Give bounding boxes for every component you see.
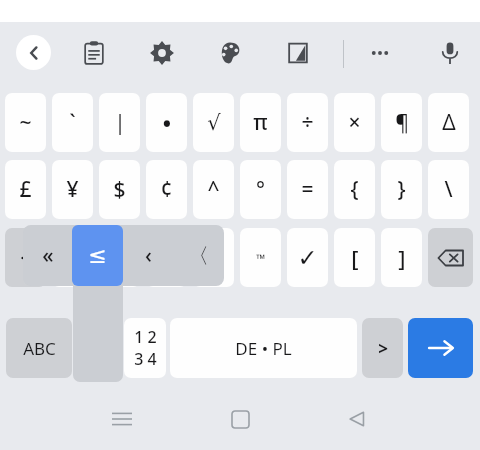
button[interactable]: ¥: [52, 160, 93, 219]
button[interactable]: «: [23, 225, 72, 286]
staticText: ÷: [301, 108, 314, 137]
button[interactable]: DE • PL: [170, 318, 357, 378]
staticText: √: [207, 111, 221, 135]
button[interactable]: ÷: [287, 93, 328, 152]
staticText: [: [351, 243, 359, 273]
staticText: ×: [348, 108, 361, 137]
button[interactable]: Clipboard: [78, 37, 110, 69]
button[interactable]: ≤: [72, 225, 123, 286]
staticText: ^: [207, 175, 220, 204]
staticText: ¥: [66, 175, 79, 204]
button[interactable]: Themes: [214, 37, 246, 69]
button[interactable]: \: [428, 160, 469, 219]
staticText: `: [69, 108, 76, 137]
staticText: ¢: [160, 175, 173, 204]
button[interactable]: ✓: [287, 228, 328, 287]
button[interactable]: Back: [16, 35, 51, 70]
button[interactable]: ¢: [146, 160, 187, 219]
button[interactable]: More options: [364, 37, 396, 69]
button[interactable]: ~: [5, 93, 46, 152]
button[interactable]: Resize keyboard: [282, 37, 314, 69]
staticText: DE • PL: [235, 337, 292, 360]
button[interactable]: ‹: [123, 225, 173, 286]
staticText: ]: [398, 243, 406, 273]
button[interactable]: °: [240, 160, 281, 219]
staticText: ¶: [395, 108, 409, 137]
button[interactable]: π: [240, 93, 281, 152]
staticText: <: [20, 244, 32, 271]
button[interactable]: Settings: [146, 37, 178, 69]
button[interactable]: •: [146, 93, 187, 152]
button[interactable]: [146, 228, 187, 287]
staticText: π: [253, 108, 268, 137]
staticText: 1 2: [134, 326, 157, 348]
button[interactable]: {: [334, 160, 375, 219]
button[interactable]: [52, 228, 93, 287]
button[interactable]: Less than variants: [5, 228, 46, 287]
staticText: \: [444, 175, 453, 204]
staticText: £: [19, 175, 32, 204]
button[interactable]: £: [5, 160, 46, 219]
button[interactable]: =: [287, 160, 328, 219]
button[interactable]: Voice input: [434, 37, 466, 69]
staticText: $: [113, 175, 126, 204]
button[interactable]: `: [52, 93, 93, 152]
button[interactable]: √: [193, 93, 234, 152]
staticText: Δ: [442, 108, 456, 137]
staticText: ✓: [297, 244, 318, 272]
button[interactable]: }: [381, 160, 422, 219]
staticText: •: [162, 105, 172, 140]
staticText: {: [350, 175, 359, 204]
staticText: }: [397, 175, 406, 204]
button[interactable]: |: [99, 93, 140, 152]
staticText: ~: [19, 108, 32, 137]
button[interactable]: >: [362, 318, 403, 378]
staticText: >: [378, 337, 388, 360]
button[interactable]: 〈: [173, 225, 224, 286]
button[interactable]: $: [99, 160, 140, 219]
button[interactable]: [193, 228, 234, 287]
staticText: 〈: [188, 243, 209, 269]
button[interactable]: Back: [340, 402, 374, 436]
staticText: ≤: [88, 243, 107, 269]
staticText: ‹: [145, 241, 152, 270]
button[interactable]: Enter: [408, 318, 473, 378]
button[interactable]: Menu: [105, 402, 139, 436]
button[interactable]: [: [334, 228, 375, 287]
button[interactable]: ¶: [381, 93, 422, 152]
button[interactable]: ABC: [6, 318, 72, 378]
staticText: °: [256, 175, 265, 204]
staticText: ™: [256, 250, 266, 266]
button[interactable]: ™: [240, 228, 281, 287]
button[interactable]: Backspace: [428, 228, 473, 287]
button[interactable]: [99, 228, 140, 287]
button[interactable]: ×: [334, 93, 375, 152]
button[interactable]: 1 2: [124, 318, 166, 378]
button[interactable]: Δ: [428, 93, 469, 152]
button[interactable]: ]: [381, 228, 422, 287]
staticText: 3 4: [134, 348, 157, 370]
staticText: =: [301, 175, 314, 204]
button[interactable]: ^: [193, 160, 234, 219]
staticText: |: [114, 108, 126, 137]
staticText: ABC: [23, 337, 56, 360]
staticText: «: [42, 241, 54, 270]
button[interactable]: Home: [223, 402, 257, 436]
